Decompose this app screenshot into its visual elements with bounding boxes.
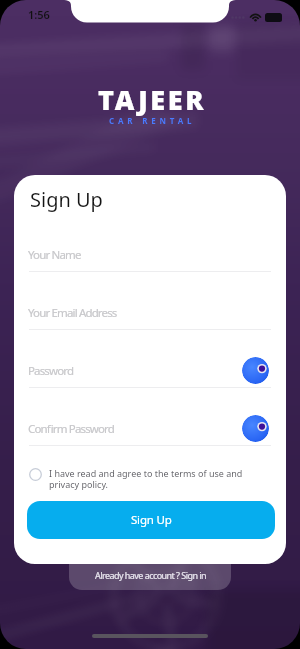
button[interactable]: Show password (242, 357, 269, 384)
staticText: 1:56 (28, 7, 50, 22)
staticText: I have read and agree to the terms of us… (49, 467, 243, 491)
button[interactable]: Already have account ? Sign in (69, 551, 231, 590)
staticText: Your Name (28, 247, 81, 263)
button[interactable]: Sign Up (27, 501, 275, 539)
staticText: Sign Up (131, 512, 172, 528)
staticText: Your Email Address (28, 305, 117, 321)
staticText: Confirm Password (28, 421, 115, 437)
staticText: CAR RENTAL (109, 115, 196, 126)
staticText: Sign Up (30, 186, 103, 213)
staticText: Already have account ? Sign in (95, 569, 206, 581)
staticText: TAJEER (98, 81, 207, 118)
button[interactable]: Show password (242, 415, 269, 442)
button[interactable]: I have read and agree to the terms of us… (29, 467, 271, 491)
staticText: Password (28, 363, 74, 379)
